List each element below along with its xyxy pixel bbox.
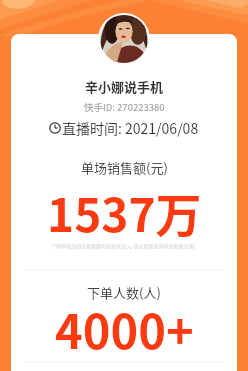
staticText: 4000+ <box>55 294 194 362</box>
button[interactable]: Profile avatar <box>100 15 148 63</box>
staticText: 1537万 <box>47 179 202 246</box>
staticText: 单场销售额(元) <box>81 158 168 177</box>
staticText: 下单人数(人) <box>87 283 161 302</box>
staticText: 快手ID: 270223380 <box>84 100 165 114</box>
staticText: (*榜单商品的交易数据可能会有出入, 请以商家登录时的数据为准) <box>52 242 196 249</box>
staticText: 直播时间: 2021/06/08 <box>62 118 199 138</box>
staticText: 辛小娜说手机 <box>85 77 164 96</box>
